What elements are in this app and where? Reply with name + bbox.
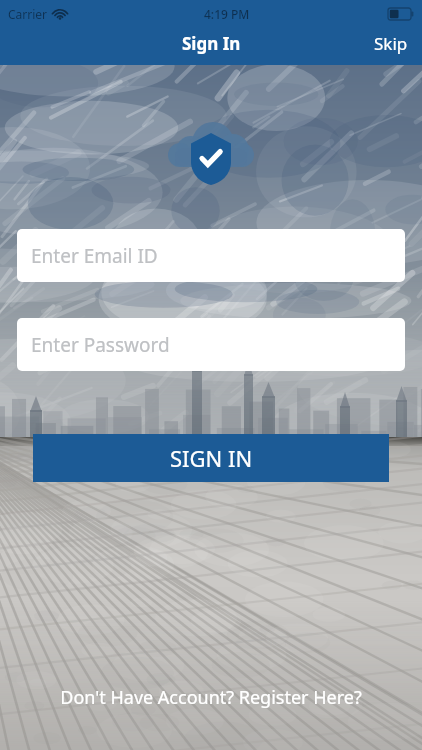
staticText: SIGN IN: [170, 443, 253, 473]
button[interactable]: Skip: [360, 22, 422, 65]
button[interactable]: Enter Password: [17, 318, 405, 371]
button[interactable]: SIGN IN: [33, 434, 389, 482]
button[interactable]: Don't Have Account? Register Here?: [42, 677, 380, 718]
staticText: Enter Email ID: [31, 243, 158, 269]
staticText: Don't Have Account? Register Here?: [60, 685, 362, 710]
button[interactable]: Enter Email ID: [17, 229, 405, 282]
staticText: 4:19 PM: [204, 6, 250, 22]
staticText: Skip: [374, 32, 408, 55]
staticText: Sign In: [182, 32, 241, 55]
staticText: Carrier: [8, 6, 48, 22]
staticText: Enter Password: [31, 332, 170, 358]
